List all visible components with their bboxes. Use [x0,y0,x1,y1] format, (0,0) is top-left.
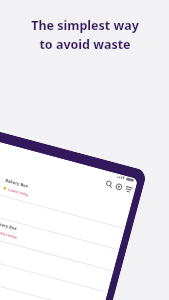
staticText: Collect today [0,229,19,240]
button[interactable]: Favourites [112,180,125,192]
button[interactable]: Filter [122,183,134,195]
staticText: The simplest way [31,17,139,34]
button[interactable]: Search [103,177,115,190]
staticText: Collect today [7,187,30,197]
button[interactable] [0,226,113,293]
button[interactable] [0,269,102,300]
staticText: Bakery Box [0,220,18,232]
button[interactable]: Bakery Box [0,162,130,229]
button[interactable] [0,184,125,250]
button[interactable]: Bakery Box [0,205,119,272]
button[interactable] [0,290,96,300]
staticText: to avoid waste [39,36,131,53]
button[interactable] [0,247,108,300]
staticText: Bakery Box [4,178,29,190]
